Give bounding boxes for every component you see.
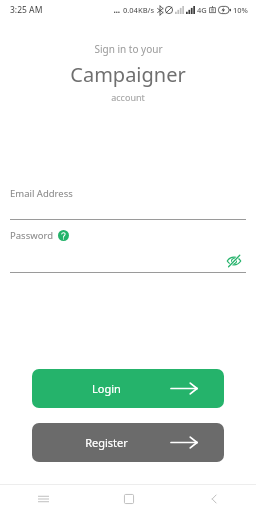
button[interactable]: Back [171,485,256,512]
button[interactable]: Password help [58,230,69,241]
staticText: account [111,91,145,103]
staticText: Register [85,435,128,450]
staticText: 0.04KB/s [123,5,155,15]
button[interactable]: Recent apps [0,485,86,512]
staticText: Login [92,381,121,396]
staticText: 3:25 AM [10,4,43,16]
staticText: Email Address [10,187,73,200]
staticText: 4G [197,5,207,15]
button[interactable]: Register [32,423,224,462]
staticText: Campaigner [70,61,186,88]
staticText: Sign in to your [94,42,163,56]
button[interactable]: Login [32,369,224,408]
button[interactable]: Home [86,485,171,512]
staticText: Password [10,229,53,242]
staticText: 10% [233,5,248,15]
button[interactable]: Show password [226,253,242,269]
